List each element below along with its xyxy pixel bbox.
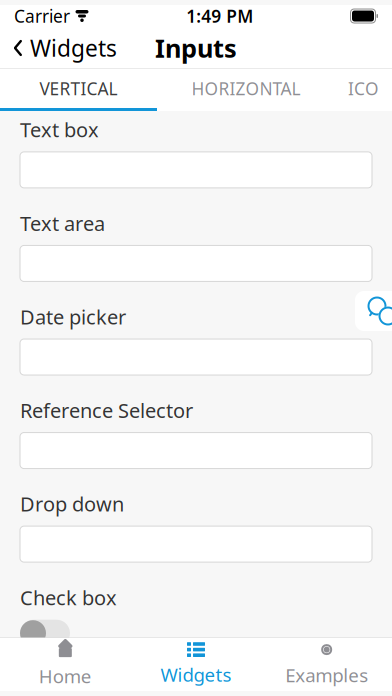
button[interactable]: VERTICAL — [0, 69, 157, 108]
staticText: ICO — [348, 77, 379, 100]
staticText: Carrier — [14, 4, 70, 27]
button[interactable]: Check box toggle, off — [20, 620, 70, 647]
staticText: Text area — [20, 210, 105, 236]
button[interactable]: Widgets — [131, 638, 261, 691]
staticText: Home — [39, 664, 92, 688]
button[interactable]: Home — [0, 638, 131, 691]
staticText: Drop down — [20, 491, 124, 517]
staticText: Text box — [20, 116, 99, 143]
staticText: HORIZONTAL — [191, 77, 300, 100]
staticText: Examples — [285, 663, 368, 687]
staticText: Inputs — [155, 31, 237, 65]
staticText: VERTICAL — [39, 77, 117, 100]
button[interactable]: Feedback — [355, 291, 392, 331]
button[interactable]: ICO — [335, 69, 392, 108]
staticText: Date picker — [20, 303, 126, 330]
staticText: Widgets — [160, 662, 231, 687]
staticText: Check box — [20, 584, 117, 611]
staticText: Reference Selector — [20, 397, 193, 424]
button[interactable]: HORIZONTAL — [157, 69, 335, 108]
button[interactable]: Widgets — [0, 27, 129, 69]
staticText: 1:49 PM — [186, 4, 253, 27]
staticText: Widgets — [30, 33, 117, 63]
button[interactable]: Examples — [261, 638, 392, 691]
